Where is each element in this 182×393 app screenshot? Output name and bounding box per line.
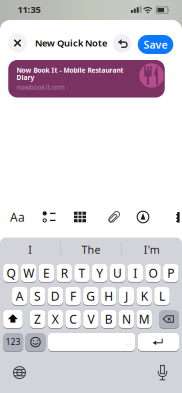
button[interactable] [25, 332, 45, 351]
button[interactable] [48, 332, 135, 351]
staticText: R [61, 265, 68, 281]
staticText: I [28, 242, 32, 257]
button[interactable]: D [48, 286, 63, 305]
staticText: Q [6, 265, 15, 281]
staticText: Diary [16, 73, 34, 82]
button[interactable]: Y [92, 263, 107, 282]
button[interactable]: I [2, 240, 58, 258]
staticText: S [34, 288, 41, 304]
staticText: U [113, 265, 122, 281]
button[interactable]: I'm [124, 240, 180, 258]
button[interactable]: Aa [6, 208, 28, 226]
button[interactable]: C [65, 309, 81, 328]
button[interactable]: H [101, 286, 116, 305]
button[interactable] [71, 208, 89, 226]
button[interactable] [11, 365, 27, 381]
button[interactable]: O [145, 263, 161, 282]
staticText: A [16, 288, 24, 304]
button[interactable] [8, 60, 165, 97]
button[interactable]: 123 [3, 332, 23, 351]
staticText: J [125, 288, 128, 304]
button[interactable]: L [154, 286, 170, 305]
button[interactable] [105, 208, 123, 226]
button[interactable] [8, 33, 27, 52]
button[interactable]: B [101, 309, 116, 328]
button[interactable]: J [119, 286, 134, 305]
staticText: B [105, 311, 113, 327]
button[interactable] [173, 208, 182, 226]
button[interactable]: Q [3, 263, 19, 282]
staticText: V [87, 311, 94, 327]
button[interactable] [134, 208, 152, 226]
button[interactable]: X [48, 309, 63, 328]
button[interactable]: R [56, 263, 72, 282]
button[interactable] [159, 309, 179, 328]
staticText: T [78, 265, 85, 281]
button[interactable]: I [127, 263, 143, 282]
staticText: F [70, 288, 76, 304]
staticText: Save [143, 37, 167, 52]
button[interactable]: Z [30, 309, 45, 328]
staticText: I'm [144, 242, 160, 257]
staticText: I [133, 265, 137, 281]
button[interactable] [138, 332, 179, 351]
button[interactable] [155, 364, 169, 382]
staticText: N [122, 311, 131, 327]
staticText: M [139, 311, 150, 327]
staticText: P [167, 265, 174, 281]
button[interactable] [113, 34, 131, 53]
button[interactable]: T [74, 263, 90, 282]
staticText: G [86, 288, 95, 304]
staticText: H [104, 288, 113, 304]
staticText: D [51, 288, 60, 304]
staticText: 11:35 [17, 3, 40, 16]
staticText: nowbookit.com [16, 83, 64, 92]
staticText: Aa [10, 209, 25, 225]
staticText: C [69, 311, 77, 327]
staticText: L [159, 288, 165, 304]
button[interactable]: N [119, 309, 134, 328]
staticText: Y [96, 265, 103, 281]
button[interactable]: V [83, 309, 99, 328]
staticText: 123 [6, 337, 21, 347]
button[interactable]: P [163, 263, 179, 282]
staticText: The [81, 242, 100, 257]
button[interactable]: W [21, 263, 36, 282]
button[interactable]: Save [138, 35, 173, 54]
button[interactable] [3, 309, 23, 328]
button[interactable]: F [65, 286, 81, 305]
staticText: E [43, 265, 50, 281]
button[interactable]: The [63, 240, 119, 258]
staticText: Z [34, 311, 41, 327]
staticText: New Quick Note [35, 37, 107, 49]
button[interactable]: K [136, 286, 152, 305]
staticText: Now Book It - Mobile Restaurant [16, 66, 123, 75]
staticText: O [148, 265, 157, 281]
button[interactable]: A [12, 286, 28, 305]
button[interactable]: E [39, 263, 54, 282]
button[interactable] [39, 208, 59, 226]
staticText: X [52, 311, 59, 327]
staticText: W [23, 265, 34, 281]
button[interactable]: G [83, 286, 99, 305]
button[interactable]: S [30, 286, 45, 305]
button[interactable]: M [136, 309, 152, 328]
button[interactable]: U [110, 263, 125, 282]
staticText: K [141, 288, 148, 304]
